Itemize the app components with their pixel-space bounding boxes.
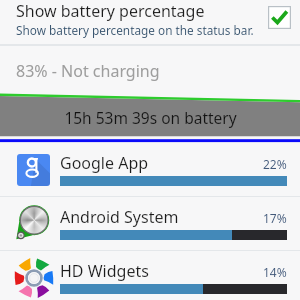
staticText: 83% - Not charging xyxy=(16,60,160,82)
button[interactable]: Google App xyxy=(0,143,300,196)
staticText: Show battery percentage xyxy=(16,0,205,22)
button[interactable]: Show battery percentage checkbox xyxy=(268,6,291,29)
staticText: HD Widgets xyxy=(60,260,149,282)
button[interactable]: Show battery percentage xyxy=(0,0,300,47)
staticText: Show battery percentage on the status ba… xyxy=(16,22,254,38)
staticText: 17% xyxy=(263,210,287,226)
staticText: Android System xyxy=(60,206,179,228)
staticText: 14% xyxy=(263,264,287,280)
staticText: 15h 53m 39s on battery xyxy=(64,107,237,128)
button[interactable]: HD Widgets xyxy=(0,251,300,300)
button[interactable]: Android System xyxy=(0,197,300,250)
staticText: 22% xyxy=(263,156,287,172)
staticText: Google App xyxy=(60,152,149,174)
